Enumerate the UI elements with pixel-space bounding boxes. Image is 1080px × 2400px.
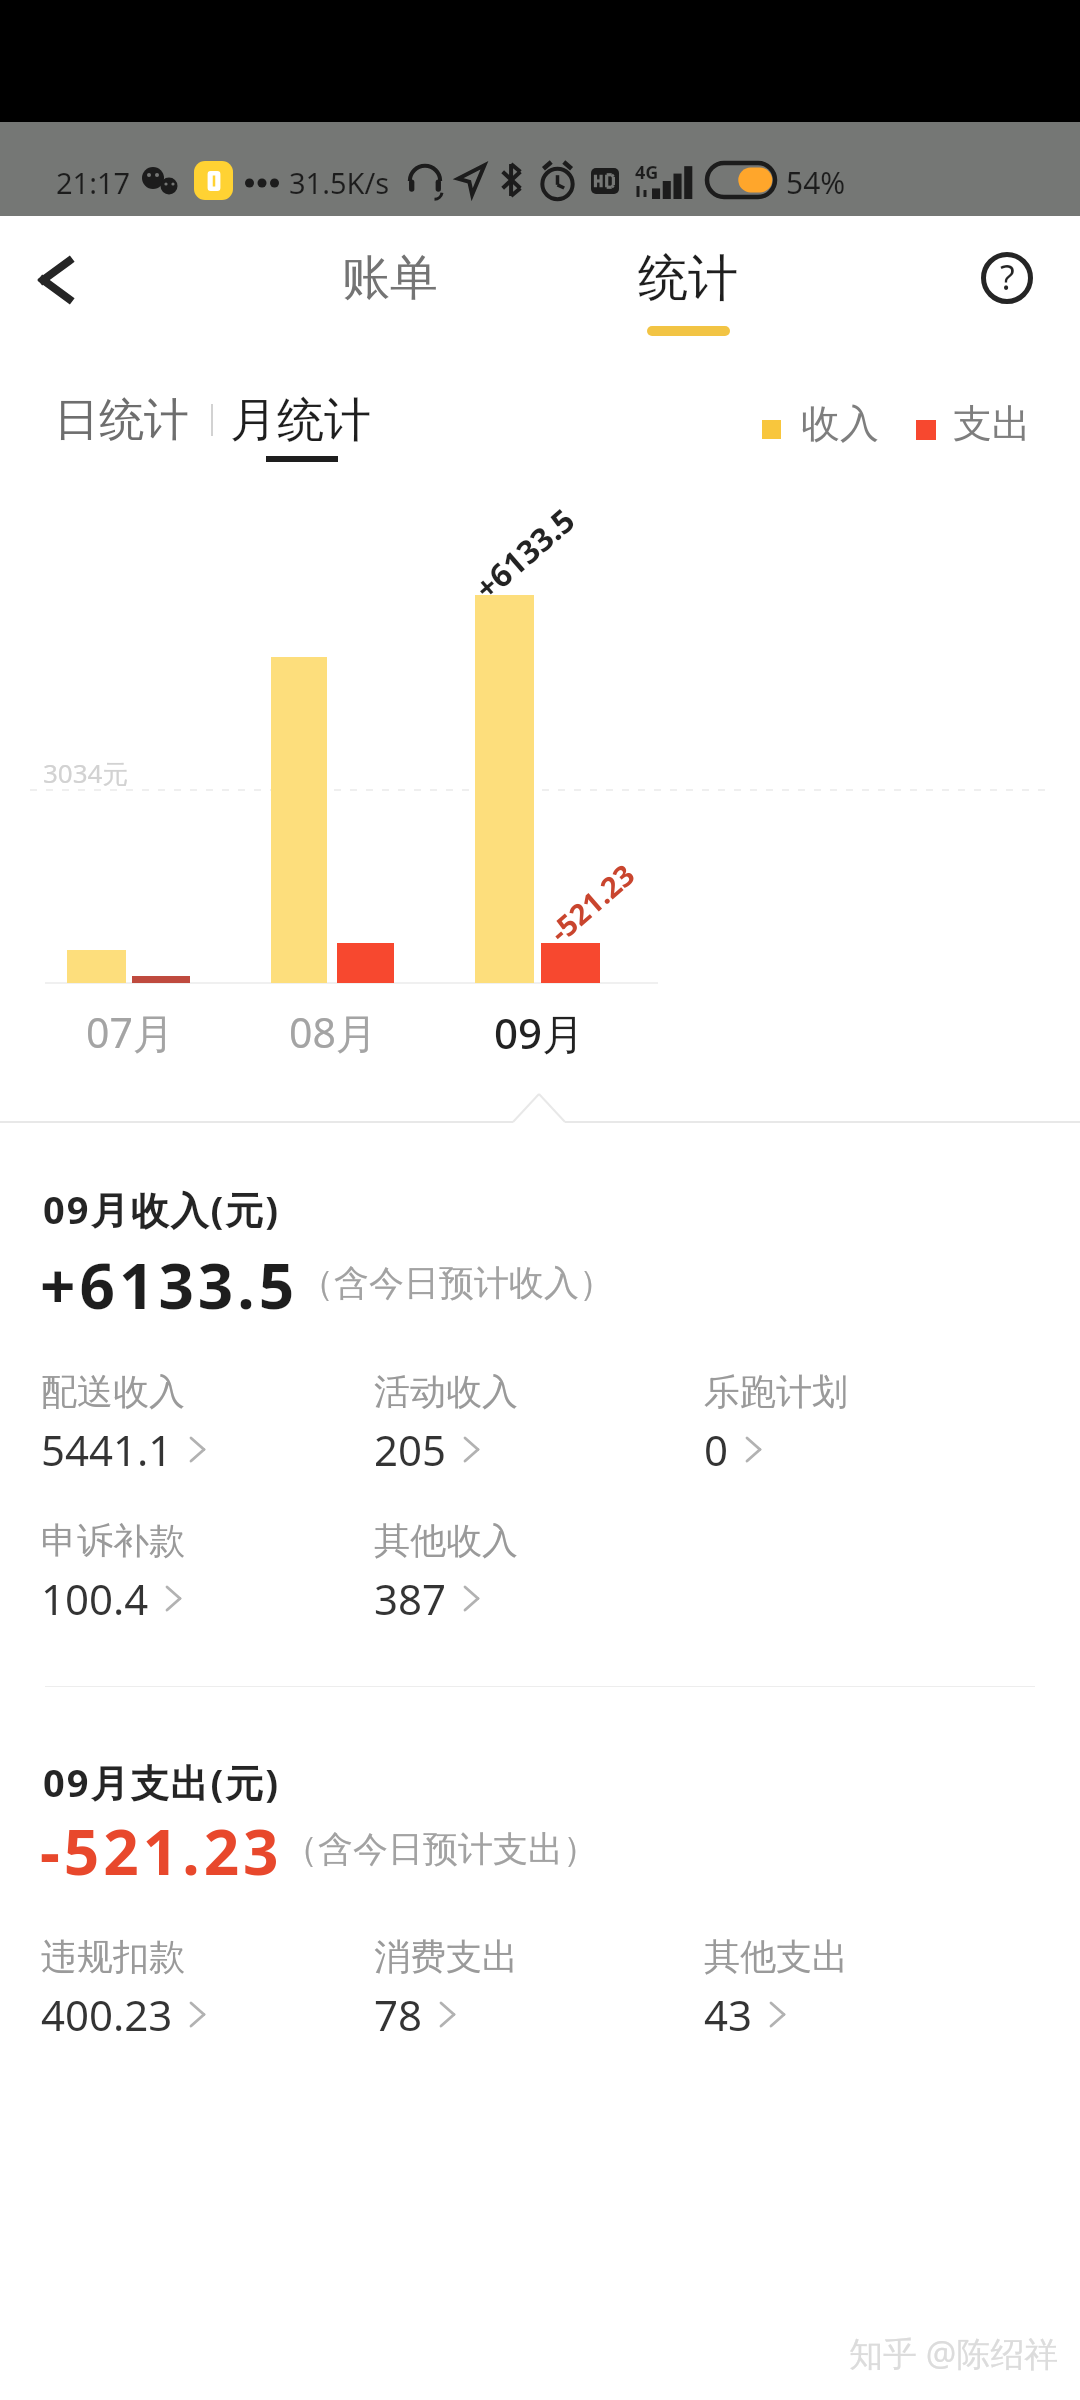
staticText: +6133.5 xyxy=(465,498,584,610)
staticText: 日统计 xyxy=(54,392,189,449)
button[interactable]: 乐跑计划 xyxy=(704,1369,1004,1478)
button[interactable]: 日统计 xyxy=(42,382,200,458)
staticText: 400.23 xyxy=(41,1986,173,2043)
staticText: （含今日预计收入） xyxy=(299,1261,614,1305)
staticText: 100.4 xyxy=(41,1570,149,1627)
button[interactable]: 配送收入 xyxy=(41,1369,341,1478)
button[interactable]: 07月 xyxy=(55,500,207,1050)
staticText: 支出 xyxy=(953,399,1031,448)
staticText: 09月收入(元) xyxy=(43,1183,281,1235)
staticText: 205 xyxy=(374,1421,447,1478)
button[interactable]: 活动收入 xyxy=(374,1369,674,1478)
staticText: 3034元 xyxy=(43,755,129,791)
staticText: 21:17 xyxy=(56,163,131,202)
staticText: 387 xyxy=(374,1570,447,1627)
staticText: 31.5K/s xyxy=(289,163,390,202)
staticText: 5441.1 xyxy=(41,1421,173,1478)
staticText: 07月 xyxy=(86,1004,174,1060)
button[interactable]: Back xyxy=(10,234,102,326)
staticText: 09月 xyxy=(494,1004,585,1061)
staticText: 收入 xyxy=(801,399,879,448)
staticText: 43 xyxy=(704,1986,753,2043)
staticText: 统计 xyxy=(638,247,738,310)
staticText: 账单 xyxy=(342,248,438,308)
staticText: 其他收入 xyxy=(374,1518,518,1563)
button[interactable]: 统计 xyxy=(598,230,778,346)
button[interactable]: 08月 xyxy=(259,500,411,1050)
staticText: 配送收入 xyxy=(41,1369,185,1414)
staticText: 08月 xyxy=(289,1004,377,1060)
staticText: 知乎 @陈绍祥 xyxy=(849,2330,1059,2376)
staticText: 乐跑计划 xyxy=(704,1369,848,1414)
staticText: 违规扣款 xyxy=(41,1934,185,1979)
button[interactable]: Help xyxy=(962,233,1052,323)
staticText: 4G xyxy=(635,160,659,185)
staticText: +6133.5 xyxy=(40,1243,299,1327)
button[interactable]: 账单 xyxy=(300,230,480,326)
staticText: 其他支出 xyxy=(704,1934,848,1979)
button[interactable]: 其他支出 xyxy=(704,1934,1004,2043)
staticText: 申诉补款 xyxy=(41,1518,185,1563)
button[interactable]: 申诉补款 xyxy=(41,1518,341,1627)
staticText: 0 xyxy=(704,1421,729,1478)
staticText: 09月支出(元) xyxy=(43,1756,281,1808)
staticText: 活动收入 xyxy=(374,1369,518,1414)
staticText: 消费支出 xyxy=(374,1934,518,1979)
button[interactable]: 违规扣款 xyxy=(41,1934,341,2043)
button[interactable]: 09月 xyxy=(463,500,615,1050)
staticText: （含今日预计支出） xyxy=(283,1827,598,1871)
staticText: 月统计 xyxy=(230,391,371,450)
button[interactable]: 其他收入 xyxy=(374,1518,674,1627)
button[interactable]: 消费支出 xyxy=(374,1934,674,2043)
staticText: -521.23 xyxy=(40,1809,283,1893)
staticText: -521.23 xyxy=(541,855,642,950)
button[interactable]: 月统计 xyxy=(228,382,398,472)
staticText: 78 xyxy=(374,1986,423,2043)
staticText: 54% xyxy=(786,162,846,203)
staticText: ? xyxy=(1000,254,1015,300)
